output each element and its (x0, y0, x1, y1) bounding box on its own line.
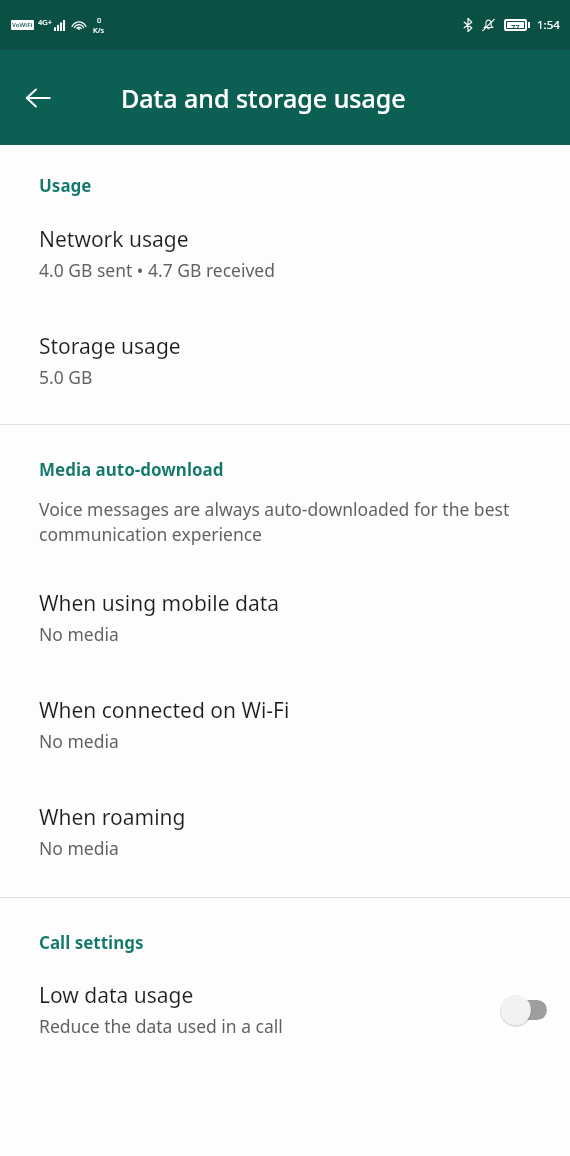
staticText: When using mobile data (39, 589, 280, 618)
staticText: Call settings (39, 931, 570, 954)
staticText: 4G+ (38, 17, 53, 27)
staticText: 1:54 (537, 17, 560, 33)
staticText: Voice messages are always auto-downloade… (39, 497, 548, 547)
button[interactable]: When using mobile data (0, 589, 570, 646)
button[interactable]: Network usage (0, 225, 570, 282)
staticText: No media (39, 729, 119, 753)
staticText: Low data usage (39, 981, 194, 1010)
staticText: 0 (97, 15, 102, 25)
staticText: Usage (39, 174, 570, 197)
button[interactable]: When connected on Wi-Fi (0, 696, 570, 753)
button[interactable]: Back (10, 70, 66, 126)
button[interactable]: Storage usage (0, 332, 570, 389)
staticText: When connected on Wi-Fi (39, 696, 290, 725)
staticText: Data and storage usage (121, 81, 406, 115)
other: Low data usage toggle (496, 992, 548, 1028)
staticText: K/s (93, 25, 105, 35)
staticText: Storage usage (39, 332, 181, 361)
button[interactable]: When roaming (0, 803, 570, 860)
staticText: 77 (511, 22, 520, 28)
staticText: 5.0 GB (39, 365, 93, 389)
staticText: Network usage (39, 225, 189, 254)
staticText: VoWiFi (12, 21, 33, 29)
staticText: Reduce the data used in a call (39, 1014, 283, 1038)
staticText: 4.0 GB sent • 4.7 GB received (39, 258, 275, 282)
staticText: No media (39, 622, 119, 646)
staticText: No media (39, 836, 119, 860)
button[interactable]: Low data usage (0, 981, 570, 1038)
staticText: When roaming (39, 803, 186, 832)
staticText: Media auto-download (39, 458, 570, 481)
